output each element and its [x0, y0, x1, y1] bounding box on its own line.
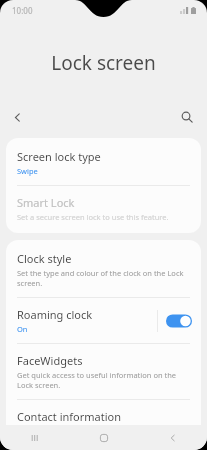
staticText: Contact information	[17, 409, 121, 424]
button[interactable]: Search	[174, 104, 200, 130]
staticText: Smart Lock	[17, 195, 75, 210]
staticText: Roaming clock	[17, 307, 93, 322]
staticText: Set a secure screen lock to use this fea…	[17, 212, 169, 222]
button[interactable]: Home	[69, 425, 138, 450]
staticText: Clock style	[17, 251, 72, 266]
button[interactable]: Back	[138, 425, 207, 450]
staticText: Screen lock type	[17, 149, 101, 164]
staticText: Set the type and colour of the clock on …	[17, 268, 192, 288]
button[interactable]: Back	[4, 104, 30, 130]
button[interactable]: Contact information	[6, 400, 201, 450]
staticText: On	[17, 324, 28, 334]
staticText: Show information such as your phone numb…	[17, 426, 192, 441]
staticText: Get quick access to useful information o…	[17, 370, 192, 390]
button[interactable]: FaceWidgets	[6, 344, 201, 399]
staticText: Swipe	[17, 166, 38, 176]
staticText: FaceWidgets	[17, 353, 83, 368]
button[interactable]: Recent apps	[0, 425, 69, 450]
button[interactable]: Roaming clock toggle, on	[166, 313, 192, 329]
staticText: 10:00	[12, 5, 33, 16]
button[interactable]: Roaming clock	[6, 298, 201, 343]
button[interactable]: Smart Lock	[6, 186, 201, 231]
staticText: Lock screen	[0, 50, 207, 76]
button[interactable]: Screen lock type	[6, 140, 201, 185]
button[interactable]: Clock style	[6, 242, 201, 297]
